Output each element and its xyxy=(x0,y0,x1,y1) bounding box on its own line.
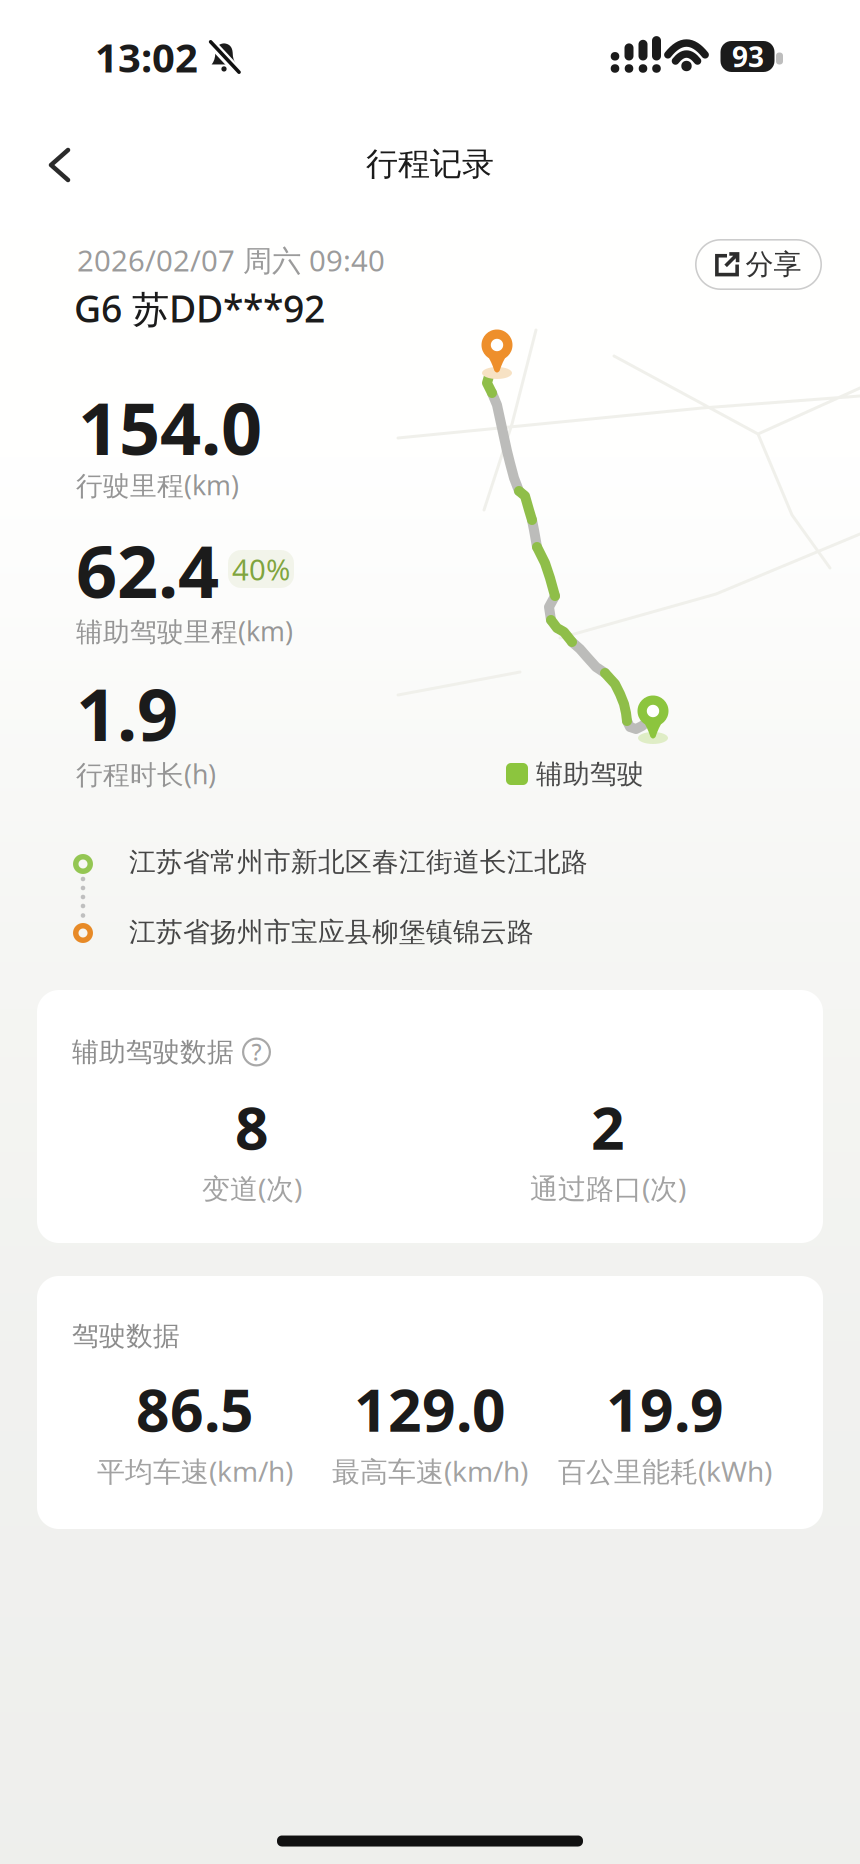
staticText: ? xyxy=(251,1037,261,1067)
staticText: 93 xyxy=(732,38,764,75)
staticText: 129.0 xyxy=(354,1370,506,1448)
staticText: 2 xyxy=(591,1088,625,1166)
button[interactable]: 帮助 xyxy=(242,1037,271,1067)
staticText: 辅助驾驶里程(km) xyxy=(76,613,293,649)
staticText: 通过路口(次) xyxy=(530,1169,686,1207)
staticText: 1.9 xyxy=(76,665,178,761)
staticText: 19.9 xyxy=(606,1370,724,1448)
staticText: 驾驶数据 xyxy=(72,1320,180,1352)
staticText: 62.4 xyxy=(76,522,219,618)
staticText: 分享 xyxy=(745,247,801,282)
staticText: 13:02 xyxy=(95,30,198,83)
staticText: 辅助驾驶数据 xyxy=(72,1036,234,1068)
staticText: 2026/02/07 周六 09:40 xyxy=(77,240,385,279)
staticText: G6 苏DD***92 xyxy=(74,283,325,333)
staticText: 86.5 xyxy=(136,1370,254,1448)
staticText: 辅助驾驶 xyxy=(536,758,644,790)
staticText: 江苏省扬州市宝应县柳堡镇锦云路 xyxy=(129,916,534,948)
staticText: 最高车速(km/h) xyxy=(332,1452,528,1490)
button[interactable]: 返回 xyxy=(39,138,80,192)
staticText: 8 xyxy=(235,1088,269,1166)
staticText: 行驶里程(km) xyxy=(76,467,239,503)
staticText: 154.0 xyxy=(78,379,262,475)
staticText: 平均车速(km/h) xyxy=(97,1452,293,1490)
staticText: 行程记录 xyxy=(366,144,494,184)
staticText: 江苏省常州市新北区春江街道长江北路 xyxy=(129,846,588,878)
button[interactable]: 分享 xyxy=(695,239,822,290)
staticText: 行程时长(h) xyxy=(76,756,216,792)
staticText: 变道(次) xyxy=(202,1169,302,1207)
staticText: 40% xyxy=(232,549,290,588)
staticText: 百公里能耗(kWh) xyxy=(558,1452,772,1490)
